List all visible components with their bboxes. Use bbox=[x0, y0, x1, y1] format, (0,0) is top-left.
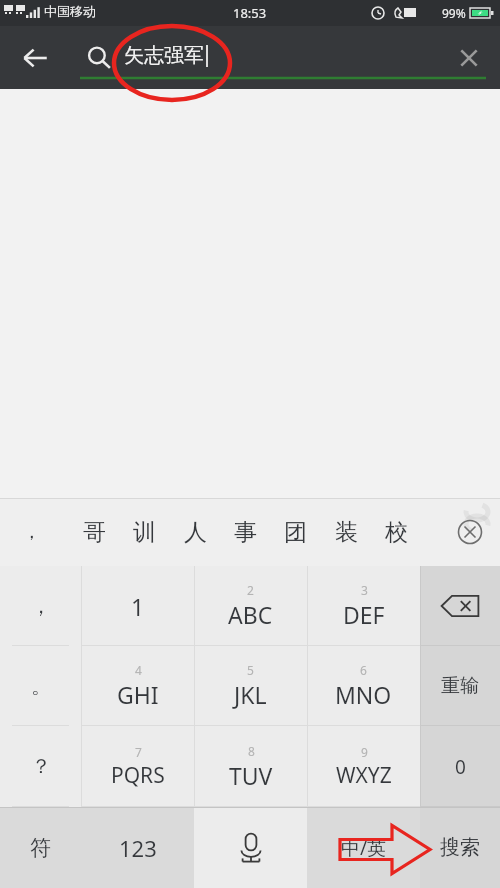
button[interactable]: 5 bbox=[194, 646, 307, 726]
button[interactable]: 事 bbox=[221, 498, 269, 566]
button[interactable]: 中/英 bbox=[307, 807, 420, 888]
button[interactable]: 人 bbox=[171, 498, 219, 566]
staticText: DEF bbox=[343, 599, 385, 630]
staticText: 9 bbox=[361, 744, 368, 760]
staticText: ， bbox=[31, 594, 51, 619]
staticText: 5 bbox=[247, 662, 254, 678]
button[interactable]: Voice input bbox=[194, 807, 307, 888]
button[interactable]: ， bbox=[0, 498, 62, 566]
staticText: 3 bbox=[361, 582, 368, 598]
staticText: 人 bbox=[184, 518, 207, 547]
staticText: WXYZ bbox=[336, 761, 392, 790]
button[interactable]: 123 bbox=[81, 807, 194, 888]
button[interactable]: 装 bbox=[322, 498, 370, 566]
staticText: JKL bbox=[234, 679, 267, 710]
button[interactable]: 3 bbox=[307, 566, 420, 646]
staticText: 中国移动 bbox=[44, 3, 96, 19]
button[interactable]: 重输 bbox=[420, 646, 500, 726]
button[interactable]: 2 bbox=[194, 566, 307, 646]
staticText: GHI bbox=[117, 679, 159, 710]
button[interactable]: 0 bbox=[420, 726, 500, 807]
button[interactable]: 4 bbox=[81, 646, 194, 726]
staticText: 装 bbox=[335, 518, 358, 547]
button[interactable]: ， bbox=[0, 566, 81, 646]
staticText: ABC bbox=[228, 599, 273, 630]
staticText: 中/英 bbox=[341, 835, 387, 861]
button[interactable]: 8 bbox=[194, 726, 307, 807]
staticText: 校 bbox=[385, 518, 408, 547]
button[interactable]: Close candidates bbox=[440, 498, 500, 566]
button[interactable]: 。 bbox=[0, 646, 81, 726]
staticText: 哥 bbox=[83, 518, 106, 547]
staticText: 团 bbox=[284, 518, 307, 547]
staticText: 8 bbox=[248, 743, 255, 759]
staticText: 123 bbox=[119, 833, 157, 863]
button[interactable]: 哥 bbox=[70, 498, 118, 566]
button[interactable]: Back bbox=[0, 26, 70, 89]
button[interactable]: Clear bbox=[438, 26, 500, 89]
staticText: 。 bbox=[31, 674, 51, 699]
button[interactable]: 符 bbox=[0, 807, 81, 888]
staticText: 6 bbox=[360, 662, 367, 678]
staticText: 2 bbox=[247, 582, 254, 598]
staticText: 符 bbox=[30, 835, 51, 861]
staticText: 0 bbox=[455, 754, 466, 780]
staticText: 18:53 bbox=[233, 4, 267, 22]
staticText: MNO bbox=[335, 679, 392, 710]
staticText: 矢志强军 bbox=[124, 43, 204, 68]
button[interactable]: 6 bbox=[307, 646, 420, 726]
staticText: 搜索 bbox=[440, 835, 480, 860]
staticText: 99% bbox=[442, 5, 466, 21]
button[interactable]: 搜索 bbox=[420, 807, 500, 888]
button[interactable]: Backspace bbox=[420, 566, 500, 646]
staticText: 1 bbox=[131, 591, 145, 622]
staticText: ， bbox=[22, 520, 41, 544]
button[interactable]: 7 bbox=[81, 726, 194, 807]
staticText: 7 bbox=[135, 744, 142, 760]
button[interactable]: 9 bbox=[307, 726, 420, 807]
button[interactable]: ？ bbox=[0, 726, 81, 807]
staticText: TUV bbox=[229, 760, 273, 791]
button[interactable]: 训 bbox=[120, 498, 168, 566]
staticText: 事 bbox=[234, 518, 257, 547]
button[interactable]: 团 bbox=[271, 498, 319, 566]
button[interactable]: 1 bbox=[81, 566, 194, 646]
button[interactable]: 校 bbox=[372, 498, 420, 566]
staticText: 重输 bbox=[441, 674, 479, 698]
staticText: ？ bbox=[31, 754, 51, 779]
staticText: 4 bbox=[135, 662, 142, 678]
staticText: PQRS bbox=[111, 761, 165, 790]
staticText: 训 bbox=[133, 518, 156, 547]
